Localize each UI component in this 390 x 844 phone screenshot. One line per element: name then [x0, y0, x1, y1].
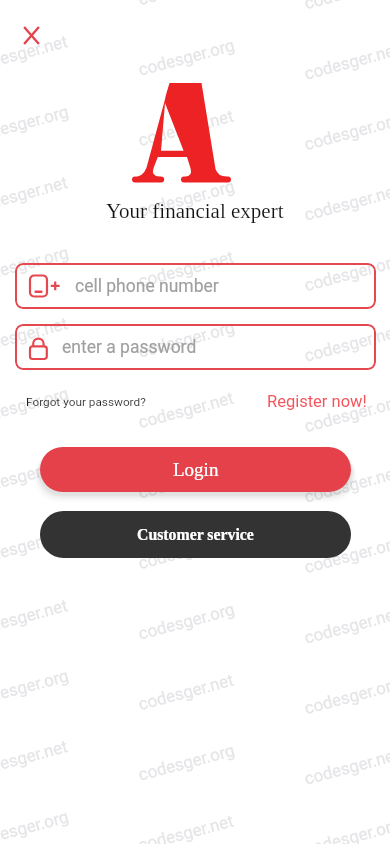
button[interactable]: cell phone number: [15, 263, 376, 309]
staticText: enter a password: [62, 337, 197, 358]
staticText: Your financial expert: [106, 199, 284, 222]
staticText: Forgot your password?: [26, 395, 146, 409]
button[interactable]: enter a password: [15, 324, 376, 370]
staticText: Register now!: [267, 392, 367, 411]
button[interactable]: Customer service: [40, 511, 351, 558]
button[interactable]: Login: [40, 447, 351, 492]
button[interactable]: Close: [13, 17, 49, 53]
staticText: Customer service: [137, 526, 254, 543]
staticText: Login: [173, 459, 219, 480]
button[interactable]: Register now!: [263, 389, 371, 414]
staticText: cell phone number: [75, 276, 219, 297]
button[interactable]: Forgot your password?: [22, 392, 150, 412]
